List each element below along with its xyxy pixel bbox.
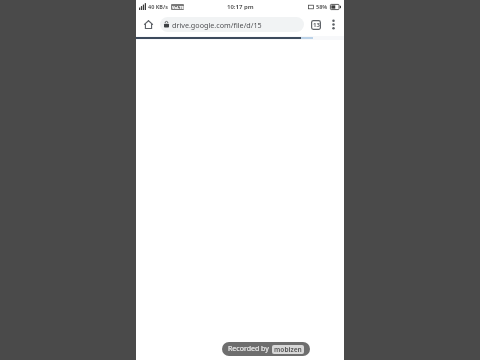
staticText: 58% xyxy=(316,3,328,10)
button[interactable]: More options xyxy=(325,16,342,33)
staticText: 40 KB/s xyxy=(148,3,169,10)
staticText: 10:17 pm xyxy=(227,3,254,11)
staticText: mobizen xyxy=(274,345,302,354)
staticText: drive.google.com/file/d/15 xyxy=(172,20,262,30)
staticText: VoLTE xyxy=(172,5,184,10)
staticText: 13 xyxy=(313,21,320,29)
button[interactable]: drive.google.com/file/d/15 xyxy=(160,17,304,32)
staticText: Recorded by xyxy=(228,344,269,354)
button[interactable]: Switch tabs, 13 open xyxy=(307,16,324,33)
button[interactable]: Home xyxy=(140,16,157,33)
